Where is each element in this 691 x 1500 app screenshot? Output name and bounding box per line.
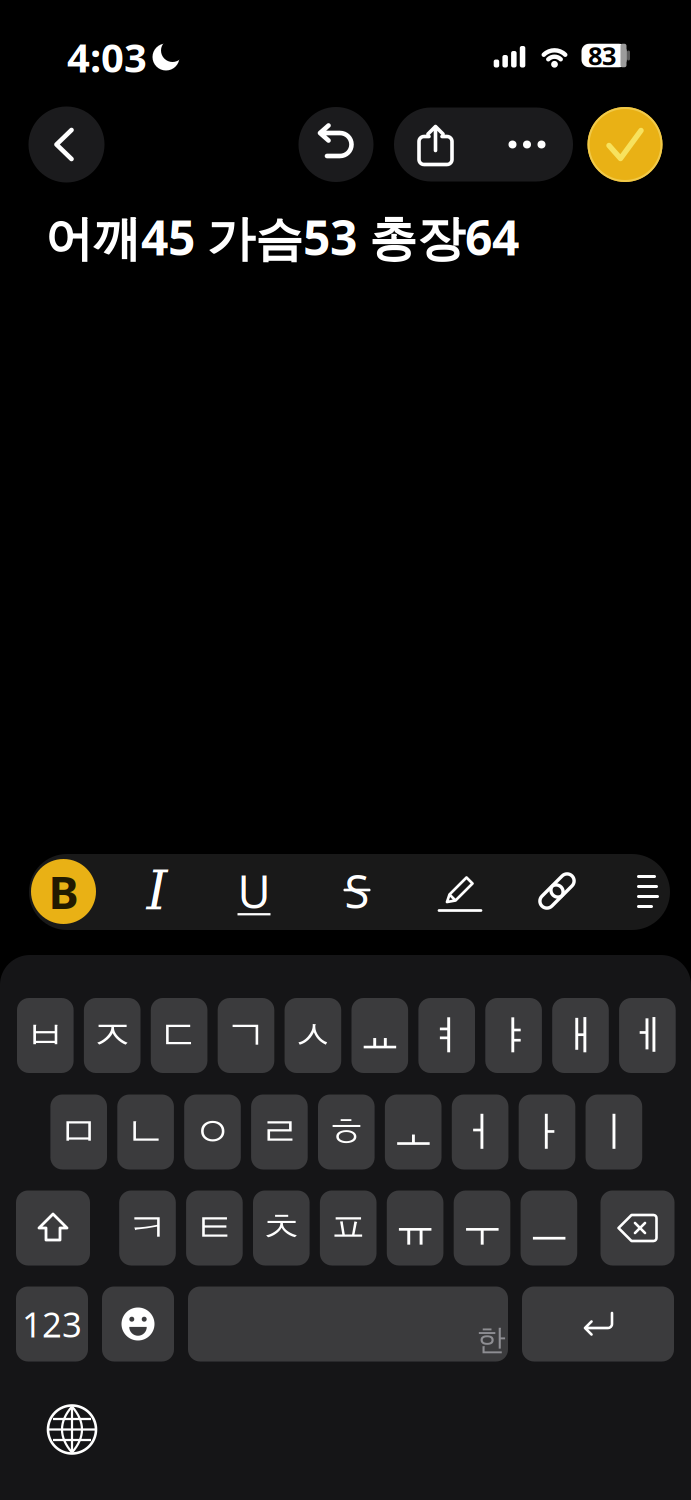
button[interactable]: ㄱ	[218, 998, 274, 1073]
button[interactable]: More	[482, 107, 572, 181]
staticText: ㅔ	[627, 1010, 668, 1061]
button[interactable]: Shift	[16, 1190, 90, 1265]
button[interactable]: ㅐ	[552, 998, 609, 1073]
staticText: ㄴ	[125, 1107, 166, 1157]
button[interactable]: ㅕ	[418, 998, 475, 1073]
button[interactable]: ㅏ	[519, 1094, 575, 1169]
button[interactable]: ㅈ	[84, 998, 140, 1073]
button[interactable]: ㅂ	[17, 998, 74, 1073]
button[interactable]: Return	[522, 1286, 674, 1361]
button[interactable]: ㅊ	[253, 1190, 310, 1265]
staticText: ㅁ	[58, 1107, 99, 1157]
button[interactable]: ㅡ	[521, 1190, 577, 1265]
staticText: ㅋ	[127, 1203, 168, 1253]
staticText: U	[237, 861, 270, 921]
button[interactable]: Underline	[224, 858, 284, 924]
staticText: ㅌ	[194, 1203, 235, 1253]
button[interactable]: Bold	[31, 859, 96, 924]
button[interactable]: ㅓ	[452, 1094, 508, 1169]
button[interactable]: ㅠ	[387, 1190, 443, 1265]
button[interactable]: ㅋ	[119, 1190, 176, 1265]
staticText: ㅍ	[328, 1203, 369, 1253]
staticText: ㅂ	[25, 1010, 66, 1061]
button[interactable]: ㅛ	[351, 998, 408, 1073]
button[interactable]: ㅔ	[619, 998, 676, 1073]
button[interactable]: Highlight	[430, 858, 490, 924]
staticText: S	[344, 861, 369, 921]
button[interactable]: ㅎ	[318, 1094, 375, 1169]
button[interactable]: ㅁ	[50, 1094, 107, 1169]
staticText: 4:03	[67, 30, 147, 83]
button[interactable]: ㄴ	[117, 1094, 174, 1169]
button[interactable]: Link	[527, 858, 587, 924]
staticText: ㅑ	[493, 1010, 534, 1061]
button[interactable]: 123	[16, 1286, 88, 1361]
button[interactable]: ㅗ	[385, 1094, 441, 1169]
button[interactable]: ㅣ	[586, 1094, 642, 1169]
staticText: ㅅ	[292, 1010, 333, 1061]
staticText: ㅗ	[393, 1107, 434, 1157]
staticText: 어깨45 가슴53 총장64	[45, 205, 519, 269]
button[interactable]: Undo	[298, 107, 373, 182]
staticText: ㅎ	[326, 1107, 367, 1157]
staticText: ㅓ	[460, 1107, 501, 1157]
button[interactable]: ㅍ	[320, 1190, 376, 1265]
staticText: ㄱ	[225, 1010, 266, 1061]
staticText: ㅠ	[395, 1203, 436, 1253]
staticText: ㅏ	[526, 1107, 567, 1157]
staticText: 한	[476, 1322, 505, 1358]
button[interactable]: Space	[188, 1286, 508, 1361]
staticText: ㅕ	[426, 1010, 467, 1061]
button[interactable]: ㅇ	[184, 1094, 241, 1169]
staticText: ㅊ	[261, 1203, 302, 1253]
button[interactable]: Share	[391, 108, 480, 182]
staticText: ㅜ	[461, 1203, 502, 1253]
staticText: ㄷ	[159, 1010, 200, 1061]
staticText: ㅈ	[92, 1010, 133, 1061]
button[interactable]: ㅌ	[186, 1190, 243, 1265]
button[interactable]: Alignment	[624, 858, 674, 924]
button[interactable]: Strikethrough	[327, 858, 387, 924]
button[interactable]: ㄹ	[251, 1094, 308, 1169]
staticText: ㅡ	[528, 1203, 569, 1253]
staticText: ㅐ	[560, 1010, 601, 1061]
button[interactable]: Back	[28, 106, 104, 182]
staticText: ㅛ	[359, 1010, 400, 1061]
staticText: B	[48, 861, 78, 922]
button[interactable]: ㄷ	[151, 998, 207, 1073]
button[interactable]: ㅅ	[285, 998, 341, 1073]
button[interactable]: ㅑ	[485, 998, 542, 1073]
staticText: I	[146, 860, 167, 922]
staticText: ㄹ	[259, 1107, 300, 1157]
button[interactable]: Done	[587, 107, 662, 182]
staticText: 83	[588, 39, 616, 72]
staticText: 123	[22, 1301, 82, 1347]
button[interactable]: Delete	[600, 1190, 674, 1265]
staticText: ㅣ	[593, 1107, 634, 1157]
staticText: ㅇ	[192, 1107, 233, 1157]
button[interactable]: Emoji	[102, 1286, 174, 1361]
button[interactable]: ㅜ	[454, 1190, 510, 1265]
button[interactable]: Next keyboard	[42, 1399, 102, 1459]
button[interactable]: Italic	[127, 858, 187, 924]
